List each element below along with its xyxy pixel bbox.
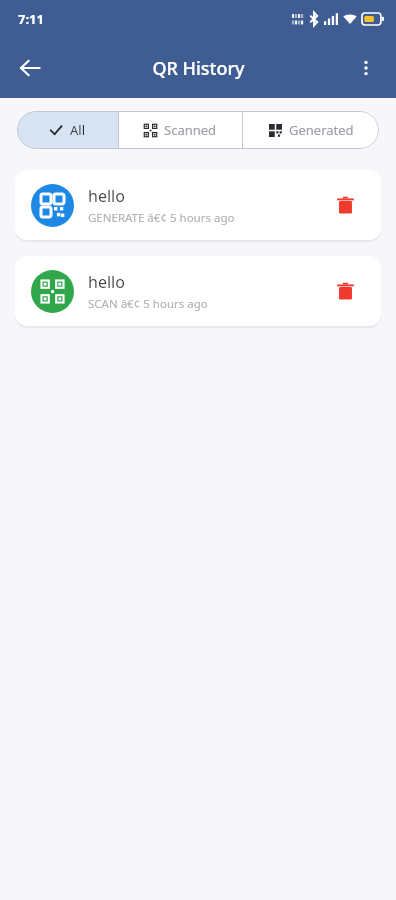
button[interactable]: All: [17, 111, 118, 149]
button[interactable]: Back: [8, 46, 52, 90]
button[interactable]: Generated: [243, 111, 379, 149]
staticText: Scanned: [164, 121, 217, 139]
staticText: GENERATE â€¢ 5 hours ago: [88, 210, 235, 226]
button[interactable]: hello: [15, 170, 381, 240]
staticText: hello: [88, 271, 125, 293]
staticText: QR History: [152, 56, 245, 81]
staticText: 7:11: [18, 10, 44, 28]
staticText: hello: [88, 185, 125, 207]
staticText: All: [70, 121, 86, 139]
staticText: Generated: [289, 121, 354, 139]
staticText: SCAN â€¢ 5 hours ago: [88, 296, 208, 312]
button[interactable]: hello: [15, 256, 381, 326]
button[interactable]: Delete: [325, 185, 365, 225]
button[interactable]: More options: [344, 46, 388, 90]
button[interactable]: Delete: [325, 271, 365, 311]
button[interactable]: Scanned: [119, 111, 242, 149]
